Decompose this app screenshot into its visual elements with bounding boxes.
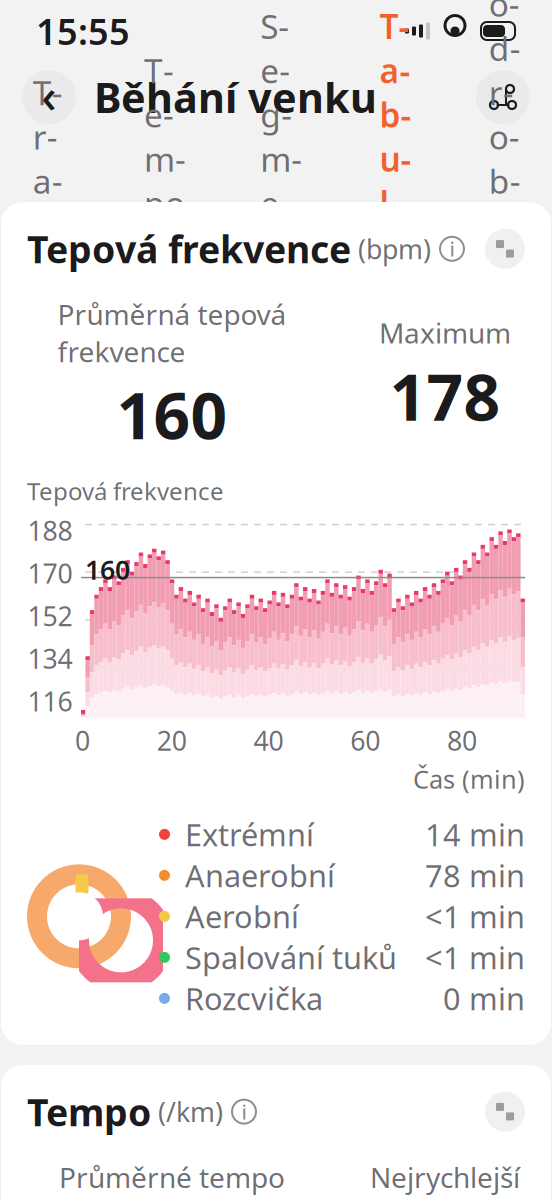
staticText: Čas (min) [413,762,525,796]
staticText: Běhání venku [94,70,377,124]
staticText: Trasa [33,70,68,247]
staticText: i [449,235,454,262]
button[interactable]: Share [476,70,530,124]
staticText: 0 [75,723,90,758]
staticText: Segmenty [260,4,302,314]
staticText: <1 min [425,937,525,978]
button[interactable]: Expand [485,229,525,269]
staticText: Průměrné tempo [59,1158,285,1196]
staticText: 20 [157,723,187,758]
staticText: Extrémní [185,814,314,855]
staticText: 160 [116,372,227,457]
staticText: 78 min [425,855,525,896]
button[interactable]: Tabulky [368,0,423,328]
staticText: Nejrychlejší [370,1158,520,1196]
staticText: ‹ [41,63,57,126]
staticText: (/km) [151,1094,223,1129]
staticText: Tempo [144,48,186,225]
staticText: 14 min [425,814,525,855]
staticText: (bpm) [351,231,431,266]
staticText: i [241,1098,246,1125]
button[interactable]: Expand [485,1092,525,1132]
staticText: Aerobní [185,896,299,937]
button[interactable]: Podrobnosti [479,0,530,394]
staticText: Maximum [379,314,511,351]
staticText: Tabulky [379,4,411,314]
staticText: 188 [27,513,72,548]
button[interactable]: Tempo [135,42,195,284]
staticText: 160 [85,552,130,587]
button[interactable]: Segmenty [251,0,311,328]
staticText: 60 [350,723,380,758]
staticText: Spalování tuků [185,937,397,978]
staticText: Průměrná tepová frekvence [57,296,286,370]
staticText: Rozcvička [185,978,323,1019]
button[interactable]: Info [439,236,465,262]
staticText: Anaerobní [185,855,335,896]
button[interactable]: Info [231,1099,257,1125]
staticText: 0 min [443,978,525,1019]
button[interactable]: Back [22,70,76,124]
staticText: <1 min [425,896,525,937]
staticText: Podrobnosti [489,0,521,380]
staticText: 80 [447,723,477,758]
staticText: 178 [389,353,500,438]
staticText: Tepová frekvence [27,224,351,274]
staticText: 152 [27,598,72,633]
staticText: 40 [253,723,283,758]
staticText: 134 [27,641,72,676]
staticText: Tempo [27,1087,151,1136]
button[interactable]: Trasa [22,64,78,262]
staticText: 15:55 [36,7,130,55]
staticText: Tepová frekvence [27,475,224,507]
staticText: 170 [27,555,72,591]
staticText: 116 [27,683,72,719]
